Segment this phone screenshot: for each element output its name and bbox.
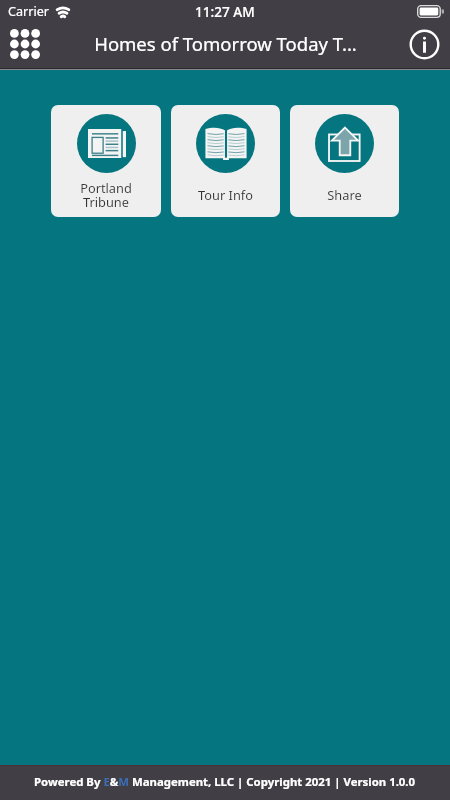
staticText: Share	[327, 186, 362, 203]
button[interactable]: Info	[403, 23, 445, 65]
button[interactable]: Portland Tribune	[51, 105, 161, 217]
button[interactable]: Menu	[4, 23, 46, 65]
staticText: Tour Info	[198, 186, 253, 203]
button[interactable]: Tour Info	[171, 105, 280, 217]
staticText: 11:27 AM	[195, 2, 255, 21]
button[interactable]: Share	[290, 105, 399, 217]
staticText: Homes of Tomorrow Today T...	[94, 31, 357, 56]
staticText: Portland Tribune	[80, 179, 132, 210]
staticText: Powered By E&M Management, LLC | Copyrig…	[34, 774, 416, 790]
staticText: Carrier	[8, 3, 49, 20]
